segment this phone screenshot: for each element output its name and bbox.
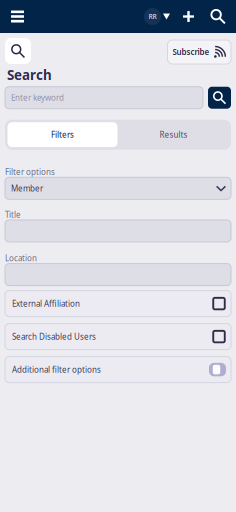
staticText: Location <box>5 253 37 264</box>
button[interactable]: External Affiliation <box>5 291 231 317</box>
staticText: Filter options <box>5 167 55 177</box>
button[interactable]: Add <box>174 0 203 33</box>
staticText: Member <box>11 183 43 194</box>
staticText: Results <box>159 129 187 140</box>
button[interactable]: Subscribe <box>167 38 231 64</box>
button[interactable]: Menu <box>5 0 30 33</box>
button[interactable]: Search Disabled Users <box>5 324 231 350</box>
button[interactable]: Additional filter options <box>5 357 231 383</box>
staticText: RR <box>148 12 156 21</box>
staticText: Subscribe <box>172 47 209 57</box>
staticText: Search Disabled Users <box>12 331 96 342</box>
button[interactable]: Account menu <box>140 0 174 33</box>
staticText: External Affiliation <box>12 298 80 309</box>
staticText: Enter keyword <box>11 92 64 103</box>
button[interactable]: Search <box>203 0 233 33</box>
staticText: Title <box>5 209 21 220</box>
staticText: Filters <box>51 129 74 140</box>
staticText: Search <box>7 66 52 84</box>
button[interactable]: Filters <box>7 122 118 148</box>
button[interactable]: Results <box>118 122 229 148</box>
button[interactable]: Run search <box>208 87 231 109</box>
button[interactable]: Open search <box>5 38 31 64</box>
staticText: Additional filter options <box>12 364 101 375</box>
